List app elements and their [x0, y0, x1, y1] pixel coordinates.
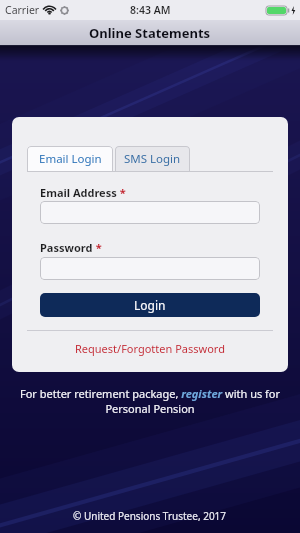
staticText: Email Address	[40, 185, 117, 200]
staticText: 8:43 AM	[130, 3, 171, 17]
staticText: *	[93, 240, 102, 255]
staticText: Password	[40, 240, 93, 255]
staticText: © United Pensions Trustee, 2017	[73, 509, 227, 523]
staticText: Carrier	[5, 3, 40, 17]
button[interactable]	[40, 201, 260, 224]
staticText: Login	[134, 297, 166, 313]
button[interactable]	[40, 257, 260, 280]
button[interactable]: Request/Forgotten Password	[12, 341, 288, 356]
staticText: Request/Forgotten Password	[75, 341, 225, 356]
button[interactable]: SMS Login	[115, 146, 190, 172]
staticText: Online Statements	[89, 24, 211, 42]
button[interactable]: Email Login	[27, 146, 113, 172]
button[interactable]: Login	[40, 293, 260, 317]
staticText: *	[117, 185, 126, 200]
button[interactable]: For better retirement package, register …	[14, 386, 286, 416]
staticText: Email Login	[39, 151, 102, 167]
staticText: SMS Login	[124, 151, 181, 167]
